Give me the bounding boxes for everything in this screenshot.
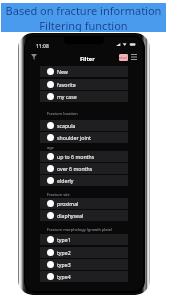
staticText: Filter <box>80 55 95 63</box>
staticText: type4 <box>57 273 71 280</box>
staticText: Fracture site <box>47 192 70 197</box>
staticText: 11:08 <box>36 43 49 50</box>
staticText: type3 <box>57 261 71 268</box>
button[interactable]: my case <box>40 91 128 102</box>
staticText: over 6 months <box>57 165 93 172</box>
staticText: diaphyseal <box>57 212 84 219</box>
button[interactable]: Filter <box>31 54 37 60</box>
button[interactable]: type1 <box>40 234 128 245</box>
button[interactable]: reset <box>119 54 128 61</box>
staticText: Fracture location <box>47 111 78 116</box>
staticText: scapula <box>57 122 76 129</box>
staticText: Fracture morphology (growth plate) <box>47 227 113 232</box>
button[interactable]: up to 6 months <box>40 151 128 162</box>
staticText: shoulder joint <box>57 134 91 141</box>
staticText: Filtering function <box>1 18 166 32</box>
button[interactable]: diaphyseal <box>40 210 128 221</box>
staticText: favorite <box>57 81 76 88</box>
button[interactable]: Menu <box>131 54 137 60</box>
staticText: type2 <box>57 249 71 256</box>
staticText: type1 <box>57 236 71 243</box>
button[interactable]: type2 <box>40 247 128 258</box>
button[interactable]: elderly <box>40 175 128 186</box>
button[interactable]: shoulder joint <box>40 132 128 143</box>
staticText: Based on fracture information <box>1 3 166 18</box>
button[interactable]: over 6 months <box>40 163 128 174</box>
button[interactable]: scapula <box>40 120 128 131</box>
staticText: reset <box>119 55 128 60</box>
button[interactable]: type4 <box>40 271 128 282</box>
staticText: up to 6 months <box>57 153 95 160</box>
staticText: age <box>47 145 54 150</box>
staticText: my case <box>57 93 77 100</box>
staticText: elderly <box>57 177 74 184</box>
staticText: proximal <box>57 200 79 207</box>
button[interactable]: type3 <box>40 259 128 270</box>
button[interactable]: favorite <box>40 79 128 90</box>
button[interactable]: New <box>40 66 128 77</box>
staticText: New <box>57 68 68 75</box>
button[interactable]: proximal <box>40 198 128 209</box>
